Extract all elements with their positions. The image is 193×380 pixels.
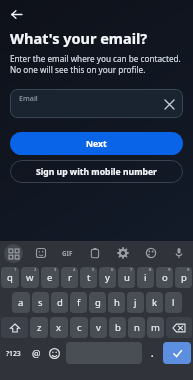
button[interactable]: o — [156, 267, 173, 288]
staticText: h — [114, 296, 120, 309]
staticText: g — [95, 296, 101, 309]
button[interactable]: Apps — [0, 241, 27, 265]
staticText: d — [57, 296, 63, 309]
staticText: 6 — [111, 267, 114, 273]
staticText: Email — [19, 93, 38, 103]
button[interactable]: p — [175, 267, 192, 288]
staticText: c — [77, 321, 82, 334]
staticText: u — [124, 271, 130, 284]
staticText: @ — [32, 347, 41, 360]
button[interactable]: Back — [5, 3, 27, 25]
staticText: 0 — [187, 267, 190, 273]
staticText: l — [172, 296, 175, 309]
button[interactable]: n — [128, 317, 145, 338]
staticText: o — [162, 271, 168, 284]
button[interactable]: Clear text — [160, 95, 178, 113]
staticText: 9 — [168, 267, 171, 273]
button[interactable]: ?123 — [1, 341, 26, 365]
staticText: k — [152, 296, 158, 309]
button[interactable]: v — [90, 317, 107, 338]
staticText: y — [105, 271, 110, 284]
button[interactable]: q — [1, 267, 19, 288]
staticText: GIF — [62, 249, 73, 257]
staticText: Sign up with mobile number — [36, 166, 157, 178]
button[interactable]: l — [165, 292, 182, 313]
button[interactable]: Themes — [137, 241, 165, 265]
button[interactable]: Clipboard — [81, 241, 109, 265]
button[interactable]: f — [70, 292, 87, 313]
staticText: 4 — [73, 267, 76, 273]
staticText: z — [37, 321, 42, 334]
staticText: Next — [86, 138, 107, 150]
button[interactable]: m — [147, 317, 164, 338]
button[interactable]: e — [41, 267, 59, 288]
staticText: 7 — [130, 267, 133, 273]
button[interactable]: w — [21, 267, 39, 288]
staticText: 2 — [34, 267, 37, 273]
button[interactable]: u — [118, 267, 135, 288]
button[interactable]: h — [108, 292, 125, 313]
staticText: . — [151, 347, 154, 359]
button[interactable]: GIF — [54, 241, 81, 265]
button[interactable]: . — [145, 341, 160, 365]
staticText: ?123 — [6, 349, 21, 358]
button[interactable]: a — [12, 292, 30, 313]
button[interactable]: g — [89, 292, 106, 313]
button[interactable]: Settings — [109, 241, 137, 265]
staticText: r — [68, 271, 72, 284]
staticText: v — [96, 321, 101, 334]
button[interactable]: Enter — [163, 342, 191, 364]
staticText: i — [144, 271, 147, 284]
button[interactable]: i — [137, 267, 154, 288]
button[interactable]: Sign up with mobile number — [10, 160, 183, 183]
staticText: 8 — [149, 267, 152, 273]
staticText: 3 — [54, 267, 57, 273]
staticText: w — [26, 271, 34, 284]
staticText: 1 — [14, 267, 17, 273]
button[interactable]: Backspace — [166, 317, 192, 338]
staticText: e — [47, 271, 53, 284]
staticText: q — [7, 271, 13, 284]
staticText: f — [77, 296, 81, 309]
button[interactable]: Next — [10, 132, 183, 155]
staticText: t — [87, 271, 91, 284]
button[interactable]: z — [30, 317, 48, 338]
staticText: What's your email? — [10, 28, 148, 48]
button[interactable]: Stickers — [27, 241, 54, 265]
button[interactable]: d — [51, 292, 68, 313]
staticText: Enter the email where you can be contact… — [10, 53, 181, 76]
button[interactable]: r — [61, 267, 78, 288]
button[interactable]: s — [32, 292, 49, 313]
staticText: a — [18, 296, 24, 309]
button[interactable]: k — [146, 292, 163, 313]
button[interactable]: t — [80, 267, 97, 288]
button[interactable]: Voice input — [165, 241, 193, 265]
staticText: b — [115, 321, 121, 334]
staticText: p — [181, 271, 187, 284]
staticText: m — [151, 321, 160, 334]
button[interactable]: @ — [28, 341, 44, 365]
button[interactable]: y — [99, 267, 116, 288]
staticText: j — [134, 296, 137, 309]
staticText: n — [134, 321, 140, 334]
button[interactable]: c — [70, 317, 88, 338]
button[interactable]: Shift — [1, 317, 28, 338]
button[interactable]: Email — [10, 89, 183, 118]
button[interactable]: Emoji — [46, 341, 63, 365]
staticText: x — [56, 321, 62, 334]
staticText: s — [38, 296, 43, 309]
staticText: 5 — [92, 267, 95, 273]
button[interactable]: j — [127, 292, 144, 313]
button[interactable]: x — [50, 317, 68, 338]
button[interactable]: b — [109, 317, 126, 338]
